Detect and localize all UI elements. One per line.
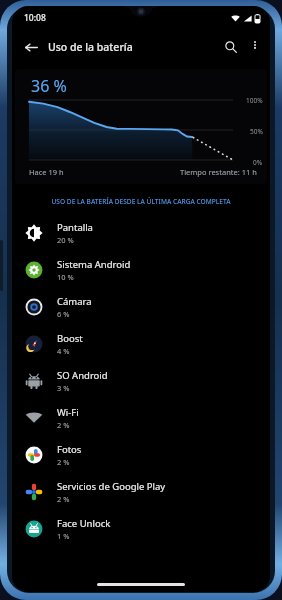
staticText: 36 % bbox=[31, 75, 67, 97]
staticText: 10:08 bbox=[24, 12, 46, 24]
staticText: Wi-Fi bbox=[57, 406, 79, 419]
button[interactable]: Pantalla bbox=[12, 214, 270, 251]
staticText: 20 % bbox=[57, 235, 74, 245]
button[interactable]: Servicios de Google Play bbox=[12, 473, 270, 510]
staticText: Face Unlock bbox=[57, 517, 111, 530]
button[interactable]: Sistema Android bbox=[12, 251, 270, 288]
button[interactable]: 36 % bbox=[15, 69, 267, 184]
staticText: 2 % bbox=[57, 457, 70, 467]
staticText: 2 % bbox=[57, 420, 70, 430]
staticText: SO Android bbox=[57, 369, 108, 382]
staticText: 50% bbox=[250, 127, 263, 136]
button[interactable]: SO Android bbox=[12, 362, 270, 399]
staticText: 0% bbox=[253, 158, 263, 167]
button[interactable]: More options bbox=[244, 34, 266, 56]
staticText: Tiempo restante: 11 h bbox=[180, 167, 257, 177]
staticText: Uso de la batería bbox=[48, 40, 133, 54]
staticText: 2 % bbox=[57, 494, 70, 504]
button[interactable]: Home bbox=[97, 583, 185, 586]
staticText: 10 % bbox=[57, 272, 74, 282]
staticText: Servicios de Google Play bbox=[57, 480, 166, 493]
staticText: 6 % bbox=[57, 309, 70, 319]
staticText: Pantalla bbox=[57, 221, 93, 234]
staticText: Cámara bbox=[57, 295, 92, 308]
button[interactable]: Back bbox=[18, 34, 44, 60]
staticText: Hace 19 h bbox=[29, 167, 64, 177]
staticText: 4 % bbox=[57, 346, 70, 356]
staticText: USO DE LA BATERÍA DESDE LA ÚLTIMA CARGA … bbox=[22, 197, 260, 206]
staticText: 100% bbox=[246, 96, 263, 105]
staticText: Boost bbox=[57, 332, 83, 345]
staticText: Fotos bbox=[57, 443, 82, 456]
button[interactable]: Fotos bbox=[12, 436, 270, 473]
button[interactable]: Cámara bbox=[12, 288, 270, 325]
staticText: Sistema Android bbox=[57, 258, 131, 271]
button[interactable]: Face Unlock bbox=[12, 510, 270, 547]
button[interactable]: Boost bbox=[12, 325, 270, 362]
button[interactable]: Search bbox=[218, 34, 244, 60]
staticText: 3 % bbox=[57, 383, 70, 393]
staticText: 1 % bbox=[57, 531, 70, 541]
button[interactable]: Wi-Fi bbox=[12, 399, 270, 436]
